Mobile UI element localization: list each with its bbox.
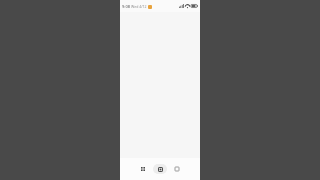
staticText: Wed 4/12 [131,4,147,9]
button[interactable]: Recents [170,164,184,174]
button[interactable]: Apps [136,164,150,174]
staticText: 9:08 [122,4,130,9]
button[interactable]: Home [153,164,167,174]
